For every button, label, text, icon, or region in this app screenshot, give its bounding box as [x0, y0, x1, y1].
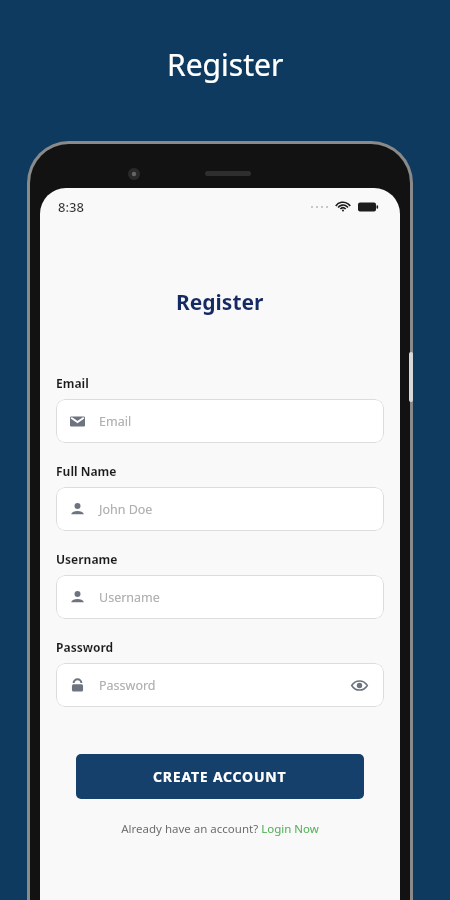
- staticText: Already have an account? Login Now: [121, 821, 319, 837]
- staticText: John Doe: [99, 501, 153, 518]
- staticText: CREATE ACCOUNT: [153, 767, 287, 786]
- staticText: Username: [56, 551, 118, 567]
- staticText: Email: [56, 375, 89, 391]
- staticText: 8:38: [58, 198, 84, 216]
- staticText: Register: [167, 44, 284, 85]
- button[interactable]: John Doe: [56, 487, 384, 531]
- staticText: Full Name: [56, 463, 117, 479]
- button[interactable]: Already have an account? Login Now: [40, 821, 400, 837]
- staticText: Register: [176, 288, 264, 317]
- staticText: Password: [56, 639, 114, 655]
- staticText: Username: [99, 589, 160, 606]
- button[interactable]: Show password: [348, 674, 370, 696]
- staticText: Password: [99, 677, 156, 694]
- button[interactable]: Email: [56, 399, 384, 443]
- staticText: Email: [99, 413, 132, 430]
- button[interactable]: Username: [56, 575, 384, 619]
- button[interactable]: Password: [56, 663, 384, 707]
- button[interactable]: CREATE ACCOUNT: [76, 754, 364, 799]
